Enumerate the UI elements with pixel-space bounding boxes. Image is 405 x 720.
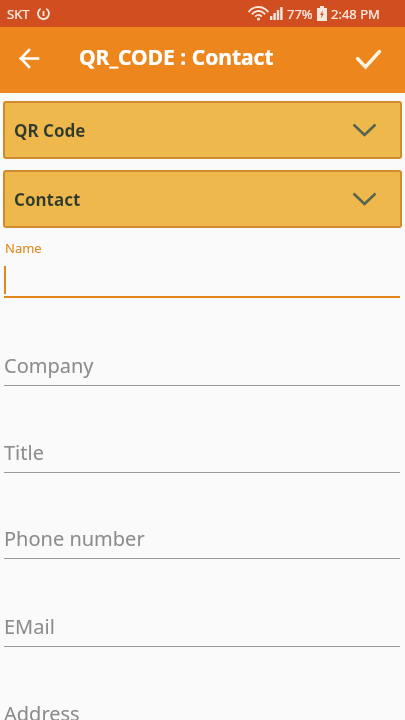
button[interactable]: QR Code	[3, 101, 402, 159]
staticText: EMail	[4, 613, 55, 640]
staticText: 77%	[287, 5, 313, 23]
staticText: Contact	[14, 188, 81, 211]
staticText: Address	[4, 700, 80, 720]
staticText: Name	[5, 239, 42, 257]
staticText: 2:48 PM	[331, 5, 380, 23]
button[interactable]	[346, 37, 390, 81]
staticText: Title	[4, 439, 44, 466]
staticText: Phone number	[4, 525, 145, 552]
staticText: SKT	[7, 5, 30, 23]
staticText: QR Code	[14, 119, 86, 142]
staticText: Company	[4, 352, 94, 379]
button[interactable]: Contact	[3, 170, 402, 228]
staticText: QR_CODE : Contact	[79, 43, 274, 72]
button[interactable]	[8, 37, 50, 79]
